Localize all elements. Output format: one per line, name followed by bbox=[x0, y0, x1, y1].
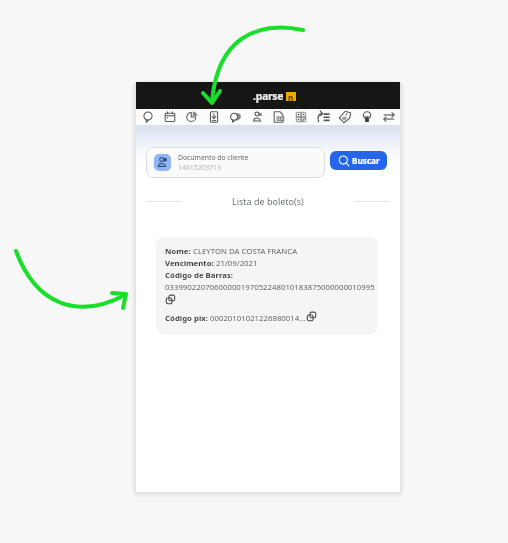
button[interactable]: Clientes bbox=[250, 109, 266, 125]
button[interactable]: Tarefas bbox=[315, 109, 331, 125]
button[interactable]: Copiar código pix bbox=[306, 311, 317, 322]
staticText: Vencimento: bbox=[165, 258, 216, 269]
button[interactable]: Promocoes bbox=[337, 109, 353, 125]
staticText: Código pix: bbox=[165, 313, 210, 324]
staticText: 0339902207060000019705224801018387500000… bbox=[165, 282, 375, 293]
staticText: n bbox=[288, 92, 294, 101]
button[interactable]: Calculadora bbox=[293, 109, 309, 125]
staticText: Lista de boleto(s) bbox=[232, 195, 304, 207]
button[interactable]: Etiquetas bbox=[228, 109, 244, 125]
staticText: Nome: bbox=[165, 246, 193, 257]
staticText: Documento do cliente bbox=[178, 153, 249, 162]
staticText: 21/09/2021 bbox=[216, 258, 258, 269]
staticText: Buscar bbox=[352, 155, 380, 166]
button[interactable]: Buscar bbox=[330, 151, 387, 170]
staticText: CLEYTON DA COSTA FRANCA bbox=[193, 246, 298, 257]
staticText: 14615203713 bbox=[178, 163, 221, 172]
button[interactable]: Downloads bbox=[206, 109, 222, 125]
button[interactable]: Documentos bbox=[271, 109, 287, 125]
staticText: Código de Barras: bbox=[165, 270, 234, 281]
button[interactable]: Agenda bbox=[162, 109, 178, 125]
staticText: 00020101021226880014... bbox=[210, 313, 306, 324]
staticText: .parse bbox=[253, 89, 284, 103]
button[interactable]: Documento do cliente bbox=[146, 147, 325, 178]
button[interactable]: Relatorios bbox=[184, 109, 200, 125]
button[interactable]: Copiar código de barras bbox=[165, 294, 176, 305]
button[interactable]: Transferencias bbox=[381, 109, 397, 125]
button[interactable]: Nome: bbox=[156, 237, 378, 335]
button[interactable]: Ideias bbox=[359, 109, 375, 125]
button[interactable]: Mensagens bbox=[140, 109, 156, 125]
